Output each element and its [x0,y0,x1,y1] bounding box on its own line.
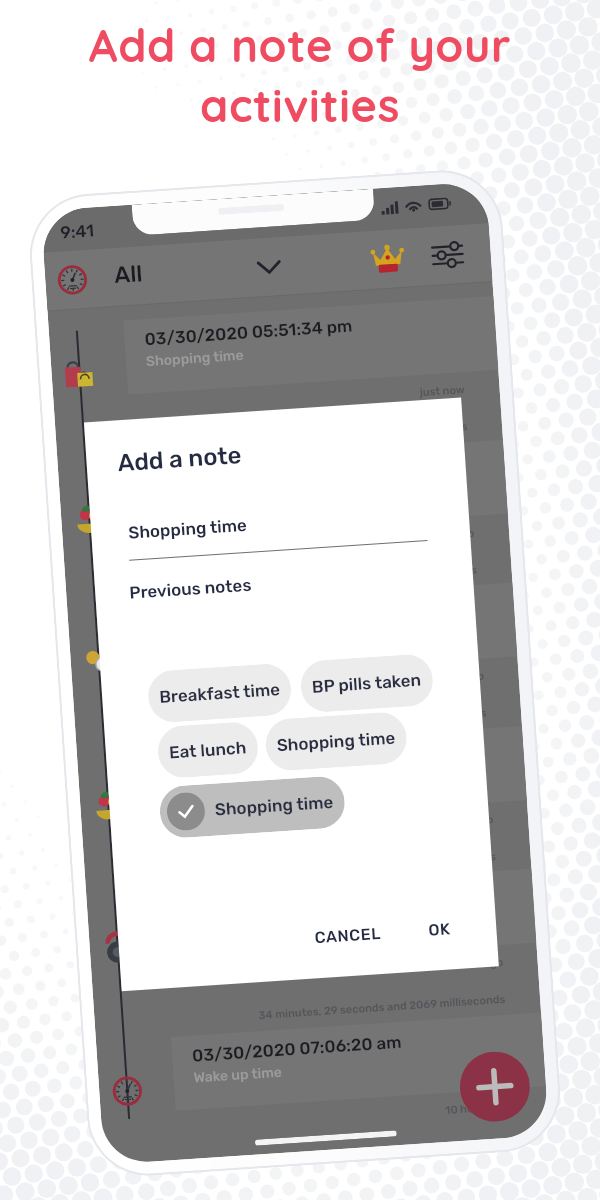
button[interactable]: Expand filter [246,243,292,290]
staticText: Shopping time [276,727,396,755]
staticText: 34 minutes, 29 seconds and 2069 millisec… [239,706,487,736]
staticText: 03/30/2020 05:51:34 pm [144,315,354,349]
staticText: 03/30/2020 07:06:20 am [191,1032,402,1066]
staticText: Shopping time [145,347,244,370]
staticText: 03/30/2020 11:02:37 am [172,746,377,779]
staticText: 34 minutes, 29 seconds and 2069 millisec… [268,1136,515,1154]
staticText: BP pills taken [311,670,422,697]
staticText: Wake up time [193,1064,283,1087]
staticText: 34 minutes, 29 seconds and 2069 millisec… [249,850,497,879]
staticText: 2 hours ago [412,527,475,544]
staticText: 4 hours ago [421,669,485,687]
staticText: Previous notes [129,575,253,603]
button[interactable]: Timer [49,256,96,303]
button[interactable]: 03/30/2020 07:06:20 am [171,1012,546,1111]
staticText: 34 minutes, 29 seconds and 2069 millisec… [258,993,506,1022]
button[interactable]: Eat lunch [156,721,259,779]
staticText: 8 hours ago [440,956,504,973]
button[interactable]: Add activity [458,1049,532,1124]
staticText: Add a note [117,441,242,477]
staticText: Add a note of your activities [0,17,600,133]
button[interactable]: 03/30/2020 05:51:34 pm [123,296,498,394]
button[interactable]: 03/30/2020 09:14:09 am [161,869,536,967]
staticText: Eat lunch [168,737,247,762]
staticText: All [113,259,144,288]
button[interactable]: OK [417,913,462,946]
staticText: just now [419,383,466,399]
staticText: 34 minutes, 29 seconds and 2069 millisec… [220,420,468,449]
button[interactable]: 03/30/2020 01:11:48 pm [142,582,517,681]
button[interactable]: Shopping time [158,775,346,839]
staticText: CANCEL [314,924,382,947]
button[interactable]: All [113,259,144,288]
button[interactable]: Breakfast time [147,662,293,724]
staticText: 6 hours ago [431,813,495,830]
staticText: 9:41 [60,220,95,243]
button[interactable]: Shopping time [264,711,408,772]
staticText: Shopping time [128,515,248,543]
button[interactable]: Pro version [364,235,411,282]
staticText: 03/30/2020 03:26:05 pm [153,459,366,493]
staticText: Shopping time [214,792,334,819]
button[interactable]: BP pills taken [299,653,434,713]
button[interactable]: 03/30/2020 03:26:05 pm [133,440,508,538]
button[interactable]: CANCEL [304,917,392,954]
staticText: Breakfast time [159,679,281,707]
button[interactable]: 03/30/2020 11:02:37 am [152,726,527,824]
staticText: 10 hours ago [445,1099,514,1117]
staticText: 34 minutes, 29 seconds and 2069 millisec… [230,564,478,593]
button[interactable]: Settings [424,232,471,278]
staticText: OK [428,919,452,940]
staticText: Eat lunch [174,779,239,800]
